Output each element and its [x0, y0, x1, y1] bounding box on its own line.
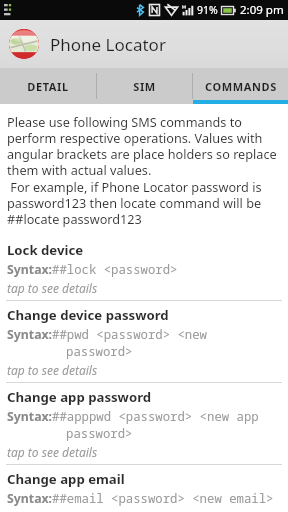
staticText: For example, if Phone Locator password i…	[7, 178, 281, 227]
button[interactable]: Change app email	[0, 465, 288, 512]
staticText: Syntax:##email <password> <new email>	[7, 490, 274, 507]
button[interactable]: Lock device	[0, 236, 288, 300]
staticText: COMMANDS	[205, 79, 277, 94]
button[interactable]: COMMANDS	[193, 68, 288, 104]
staticText: Syntax:##apppwd <password> <new app	[7, 408, 259, 425]
staticText: tap to see details	[7, 362, 98, 378]
staticText: Phone Locator	[50, 33, 166, 56]
button[interactable]: Change device password	[0, 301, 288, 382]
staticText: DETAIL	[27, 79, 69, 94]
staticText: SIM	[133, 79, 156, 94]
staticText: 2:09 pm	[240, 2, 284, 18]
button[interactable]: Change app password	[0, 383, 288, 464]
staticText: Syntax:##pwd <password> <new	[7, 326, 207, 343]
staticText: Change app email	[7, 470, 125, 488]
button[interactable]: SIM	[97, 68, 192, 104]
staticText: Change device password	[7, 306, 169, 324]
staticText: Lock device	[7, 241, 84, 259]
staticText: tap to see details	[7, 444, 98, 460]
staticText: tap to see details	[7, 280, 98, 296]
staticText: Please use following SMS commands to per…	[7, 113, 281, 178]
button[interactable]: DETAIL	[0, 68, 96, 104]
staticText: Syntax:##lock <password>	[7, 261, 178, 278]
staticText: password>	[7, 343, 133, 360]
staticText: password>	[7, 425, 133, 442]
staticText: 91%	[197, 3, 218, 17]
staticText: Change app password	[7, 388, 152, 406]
